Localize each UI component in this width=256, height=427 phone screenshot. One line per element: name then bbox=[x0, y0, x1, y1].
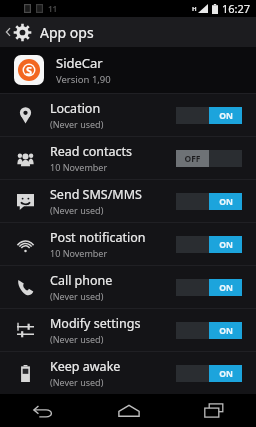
staticText: (Never used) bbox=[50, 118, 104, 130]
button[interactable]: Recent apps bbox=[171, 394, 256, 427]
button[interactable]: Toggle on bbox=[176, 236, 242, 253]
staticText: ON bbox=[219, 196, 233, 208]
staticText: 16:27 bbox=[222, 1, 251, 16]
staticText: ON bbox=[219, 368, 233, 380]
button[interactable]: Keep awake bbox=[0, 352, 256, 394]
button[interactable]: Toggle on bbox=[176, 322, 242, 339]
staticText: 10 November bbox=[50, 161, 108, 173]
staticText: SideCar bbox=[56, 54, 103, 72]
button[interactable]: App ops bbox=[0, 17, 256, 47]
button[interactable]: Toggle on bbox=[176, 279, 242, 296]
staticText: ON bbox=[219, 110, 233, 122]
staticText: S bbox=[26, 63, 33, 78]
staticText: Keep awake bbox=[50, 358, 121, 375]
staticText: ON bbox=[219, 282, 233, 294]
button[interactable]: Back bbox=[0, 394, 86, 427]
staticText: Read contacts bbox=[50, 143, 133, 160]
staticText: 10 November bbox=[50, 247, 108, 259]
button[interactable]: Call phone bbox=[0, 266, 256, 308]
staticText: Post notification bbox=[50, 229, 146, 246]
button[interactable]: Toggle on bbox=[176, 193, 242, 210]
button[interactable]: Post notification bbox=[0, 223, 256, 265]
staticText: (Never used) bbox=[50, 376, 104, 388]
staticText: ON bbox=[219, 325, 233, 337]
button[interactable]: Toggle on bbox=[176, 365, 242, 382]
button[interactable]: Toggle on bbox=[176, 107, 242, 124]
staticText: Version 1,90 bbox=[56, 73, 111, 86]
staticText: Modify settings bbox=[50, 315, 141, 332]
staticText: App ops bbox=[40, 23, 94, 42]
button[interactable]: Location bbox=[0, 94, 256, 136]
button[interactable]: Toggle off bbox=[176, 150, 242, 167]
button[interactable]: Home bbox=[86, 394, 171, 427]
staticText: (Never used) bbox=[50, 204, 104, 216]
staticText: ON bbox=[219, 239, 233, 251]
staticText: 11 bbox=[48, 3, 58, 14]
staticText: OFF bbox=[184, 153, 201, 165]
staticText: (Never used) bbox=[50, 290, 104, 302]
button[interactable]: Modify settings bbox=[0, 309, 256, 351]
staticText: Call phone bbox=[50, 272, 113, 289]
staticText: Send SMS/MMS bbox=[50, 186, 142, 203]
button[interactable]: Send SMS/MMS bbox=[0, 180, 256, 222]
staticText: (Never used) bbox=[50, 333, 104, 345]
staticText: Location bbox=[50, 100, 101, 117]
button[interactable]: Read contacts bbox=[0, 137, 256, 179]
staticText: H bbox=[192, 5, 197, 13]
